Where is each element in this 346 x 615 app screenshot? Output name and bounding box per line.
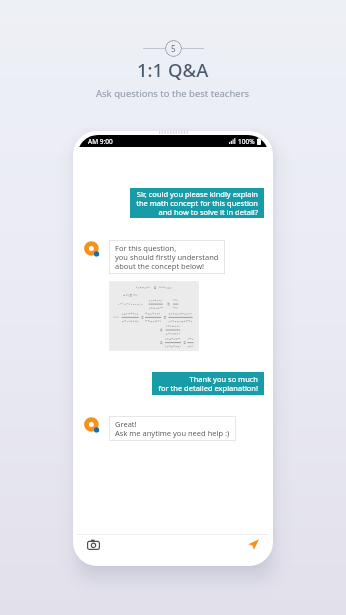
button[interactable]: Thank you so much for the detailed expla… — [152, 372, 264, 395]
staticText: 1:1 Q&A — [137, 57, 209, 82]
staticText: AM 9:00 — [88, 137, 113, 146]
button[interactable]: Great! Ask me anytime you need help :) — [109, 416, 236, 441]
button[interactable]: Handwritten solution — [109, 281, 199, 351]
staticText: Great! Ask me anytime you need help :) — [115, 419, 230, 438]
button[interactable]: Camera — [84, 535, 102, 553]
staticText: Ask questions to the best teachers — [96, 87, 250, 100]
button[interactable]: Sir, could you please kindly explain the… — [130, 188, 264, 218]
button[interactable]: For this question, you should firstly un… — [109, 240, 225, 274]
staticText: 5 — [171, 43, 176, 54]
staticText: Sir, could you please kindly explain the… — [136, 189, 258, 217]
staticText: Thank you so much for the detailed expla… — [158, 374, 258, 393]
staticText: For this question, you should firstly un… — [115, 243, 219, 271]
button[interactable]: Send — [244, 535, 262, 553]
staticText: 100% — [238, 137, 255, 146]
